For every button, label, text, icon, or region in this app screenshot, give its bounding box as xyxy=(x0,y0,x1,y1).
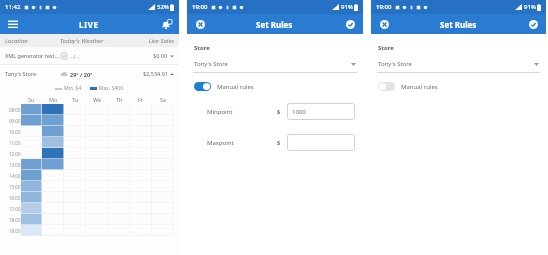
button[interactable] xyxy=(21,214,42,225)
button[interactable]: Close xyxy=(193,17,207,31)
button[interactable]: Tony's Store xyxy=(0,65,179,82)
button[interactable] xyxy=(21,115,42,126)
button[interactable] xyxy=(42,148,64,159)
button[interactable] xyxy=(42,137,64,148)
button[interactable] xyxy=(42,126,64,137)
button[interactable]: Manual rules xyxy=(194,82,356,91)
button[interactable]: Tony's Store xyxy=(194,60,356,68)
staticText: 29° / 20° xyxy=(70,71,93,78)
button[interactable]: XML generator test... xyxy=(0,47,179,64)
button[interactable]: Tony's Store xyxy=(378,60,539,68)
button[interactable]: Open navigation menu xyxy=(6,17,20,31)
button[interactable]: 1000 xyxy=(287,103,355,120)
button[interactable] xyxy=(42,115,64,126)
button[interactable] xyxy=(21,159,42,170)
button[interactable]: Notifications xyxy=(159,17,173,31)
button[interactable]: Manual rules xyxy=(378,82,539,91)
button[interactable] xyxy=(21,181,42,192)
button[interactable] xyxy=(21,203,42,214)
button[interactable]: Save xyxy=(343,17,357,31)
button[interactable]: Close xyxy=(377,17,391,31)
button[interactable] xyxy=(21,192,42,203)
button[interactable] xyxy=(21,170,42,181)
button[interactable]: Save xyxy=(526,17,540,31)
staticText: We xyxy=(93,96,102,103)
button[interactable] xyxy=(21,225,42,236)
button[interactable] xyxy=(287,134,355,151)
button[interactable] xyxy=(21,104,42,115)
button[interactable] xyxy=(42,159,64,170)
button[interactable] xyxy=(42,104,64,115)
